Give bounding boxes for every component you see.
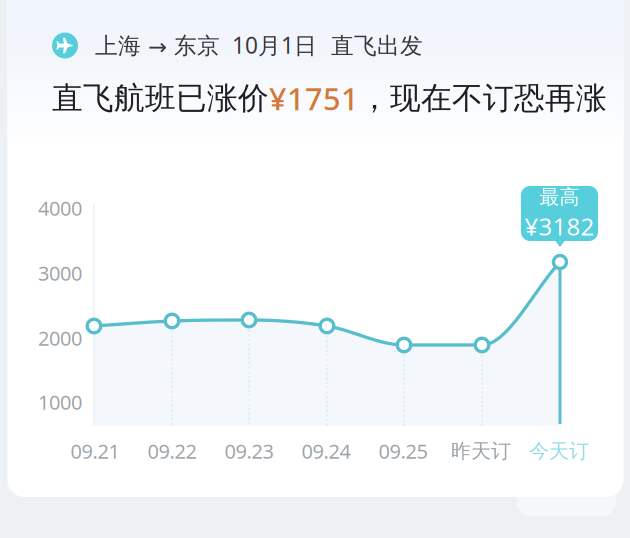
staticText: 直飞航班已涨价	[52, 79, 269, 117]
staticText: 09.21	[70, 438, 119, 464]
staticText: 09.22	[147, 438, 196, 464]
staticText: 昨天订	[451, 439, 511, 463]
staticText: 09.23	[224, 438, 273, 464]
staticText: 上海 → 东京 10月1日 直飞出发	[95, 30, 423, 60]
staticText: 今天订	[529, 439, 589, 463]
staticText: 现在不订恐再涨	[390, 79, 607, 117]
staticText: 3000	[38, 260, 82, 286]
staticText: 2000	[38, 325, 82, 351]
staticText: ¥1751	[269, 78, 359, 119]
staticText: ¥3182	[524, 210, 594, 242]
staticText: 4000	[38, 195, 82, 221]
staticText: 09.24	[301, 438, 350, 464]
staticText: ，	[359, 79, 390, 117]
staticText: 最高	[539, 185, 579, 209]
staticText: 1000	[38, 389, 82, 415]
staticText: 09.25	[378, 438, 427, 464]
